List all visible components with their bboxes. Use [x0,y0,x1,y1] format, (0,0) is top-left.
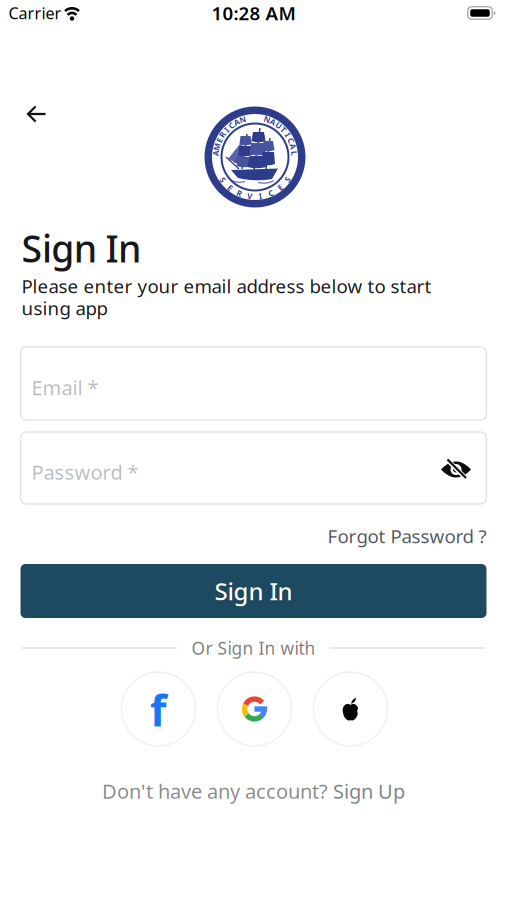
staticText: A [290,141,296,152]
staticText: Forgot Password ? [327,524,486,548]
staticText: A [213,148,219,158]
staticText: T [281,124,286,135]
button[interactable]: Sign in with Apple [313,672,387,746]
staticText: I [259,191,262,201]
staticText: Don't have any account? [102,778,328,804]
staticText: C [268,188,273,198]
staticText: S [285,174,289,185]
staticText: N [239,114,246,125]
staticText: R [220,129,225,140]
staticText: L [292,148,296,158]
staticText: E [278,182,282,193]
staticText: 10:28 AM [211,1,295,25]
staticText: M [213,141,221,152]
staticText: A [270,117,276,127]
staticText: Sign In [214,575,292,607]
button[interactable]: Sign In [20,564,486,618]
button[interactable]: Sign in with Google [217,672,291,746]
staticText: I [225,124,228,135]
button[interactable]: Sign Up [333,778,405,804]
button[interactable]: Forgot Password ? [327,524,486,548]
button[interactable]: Show password [436,452,476,486]
staticText: Password * [31,459,138,485]
staticText: N [264,114,271,125]
staticText: Email * [31,374,98,401]
staticText: R [237,188,242,198]
staticText: C [229,120,234,131]
button[interactable]: Back [20,99,54,129]
staticText: using app [21,295,107,320]
staticText: C [288,135,293,146]
staticText: Carrier [8,2,61,24]
staticText: f [150,682,167,738]
button[interactable]: Sign in with Facebook [121,672,195,746]
staticText: I [286,129,289,140]
staticText: Sign In [21,223,141,273]
button[interactable]: Email [20,347,486,420]
staticText: A [234,117,240,127]
staticText: Sign Up [333,778,405,804]
staticText: V [247,191,252,201]
staticText: Please enter your email address below to… [21,274,431,298]
button[interactable]: Password [20,432,486,504]
staticText: Or Sign In with [191,636,315,659]
staticText: S [221,174,225,185]
staticText: E [228,182,232,193]
staticText: U [276,120,282,131]
staticText: E [217,135,221,146]
